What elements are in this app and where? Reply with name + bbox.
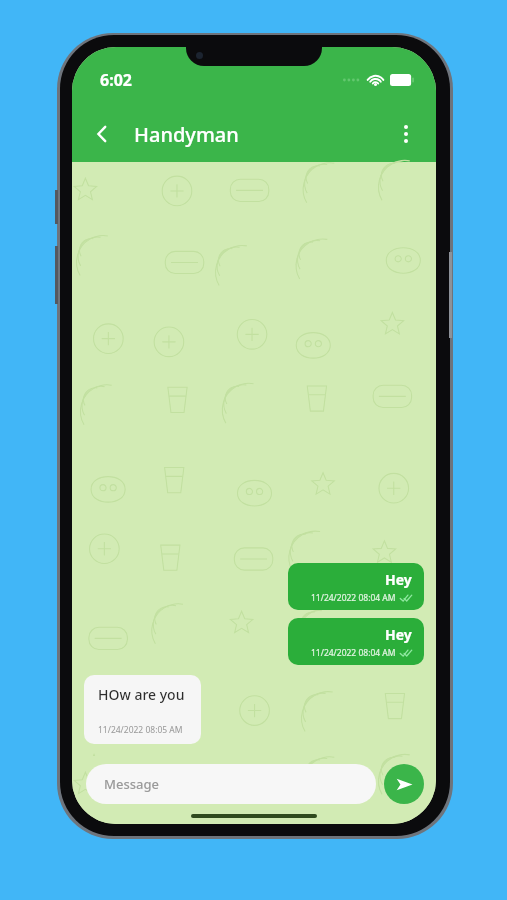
staticText: Hey	[385, 570, 412, 589]
button[interactable]: Back	[80, 112, 124, 156]
staticText: 6:02	[100, 69, 132, 91]
staticText: Hey	[385, 625, 412, 644]
staticText: 11/24/2022 08:04 AM	[311, 592, 396, 604]
staticText: 11/24/2022 08:05 AM	[98, 724, 183, 736]
staticText: 11/24/2022 08:04 AM	[311, 647, 396, 659]
button[interactable]: Hey	[288, 618, 424, 665]
button[interactable]: More options	[384, 112, 428, 156]
button[interactable]: Hey	[288, 563, 424, 610]
staticText: Message	[104, 775, 159, 793]
staticText: Handyman	[134, 121, 239, 148]
staticText: HOw are you	[98, 685, 185, 704]
button[interactable]: Message	[86, 764, 376, 804]
button[interactable]: HOw are you	[84, 675, 201, 744]
button[interactable]: Send	[384, 764, 424, 804]
